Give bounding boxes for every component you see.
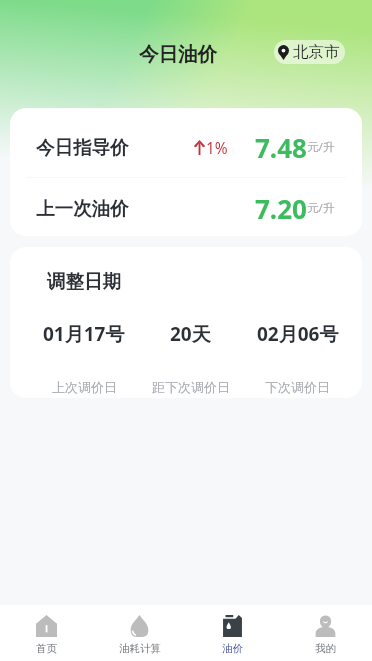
button[interactable]: 今日指导价 bbox=[10, 108, 362, 177]
button[interactable]: 北京市 bbox=[274, 40, 345, 64]
staticText: 今日油价 bbox=[139, 42, 217, 67]
staticText: 首页 bbox=[36, 642, 57, 655]
staticText: 油耗计算 bbox=[119, 642, 161, 655]
staticText: 7.48 bbox=[255, 130, 307, 165]
staticText: 上一次油价 bbox=[36, 197, 129, 220]
staticText: 元/升 bbox=[307, 139, 335, 155]
staticText: 元/升 bbox=[307, 200, 335, 216]
button[interactable]: 我的 bbox=[279, 605, 372, 661]
staticText: 油价 bbox=[222, 642, 243, 655]
button[interactable]: 上一次油价 bbox=[10, 178, 362, 236]
button[interactable]: 油价 bbox=[186, 605, 279, 661]
staticText: 调整日期 bbox=[47, 270, 121, 293]
staticText: 北京市 bbox=[293, 42, 340, 62]
staticText: 上次调价日 bbox=[52, 379, 117, 395]
staticText: 下次调价日 bbox=[265, 379, 330, 395]
staticText: 我的 bbox=[315, 642, 336, 655]
staticText: 20天 bbox=[170, 321, 211, 347]
staticText: 今日指导价 bbox=[36, 136, 129, 159]
staticText: 02月06号 bbox=[257, 321, 339, 347]
staticText: 01月17号 bbox=[43, 321, 125, 347]
staticText: 7.20 bbox=[255, 191, 307, 226]
staticText: 距下次调价日 bbox=[152, 379, 230, 395]
button[interactable]: 油耗计算 bbox=[93, 605, 186, 661]
button[interactable]: 首页 bbox=[0, 605, 93, 661]
staticText: 1% bbox=[206, 137, 228, 158]
